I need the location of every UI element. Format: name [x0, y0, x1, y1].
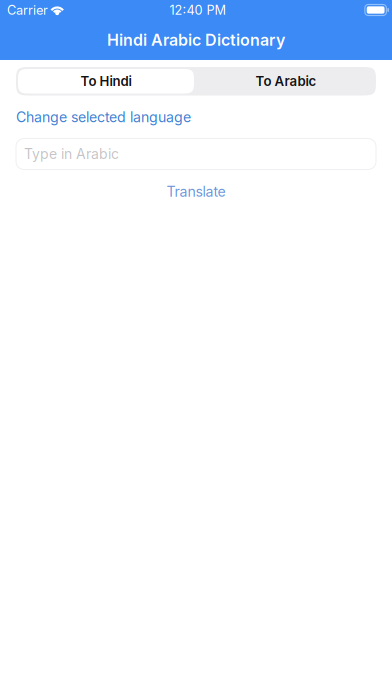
button[interactable]: Translate — [166, 180, 225, 202]
staticText: To Arabic — [255, 73, 316, 89]
staticText: 12:40 PM — [169, 2, 226, 18]
button[interactable]: Change selected language — [16, 106, 191, 127]
button[interactable]: To Arabic — [196, 67, 376, 95]
staticText: Hindi Arabic Dictionary — [107, 30, 285, 50]
staticText: Type in Arabic — [24, 145, 119, 162]
staticText: To Hindi — [80, 73, 131, 89]
staticText: Change selected language — [16, 108, 191, 125]
button[interactable]: To Hindi — [16, 67, 196, 95]
staticText: Carrier — [7, 2, 48, 18]
staticText: Translate — [166, 183, 225, 200]
